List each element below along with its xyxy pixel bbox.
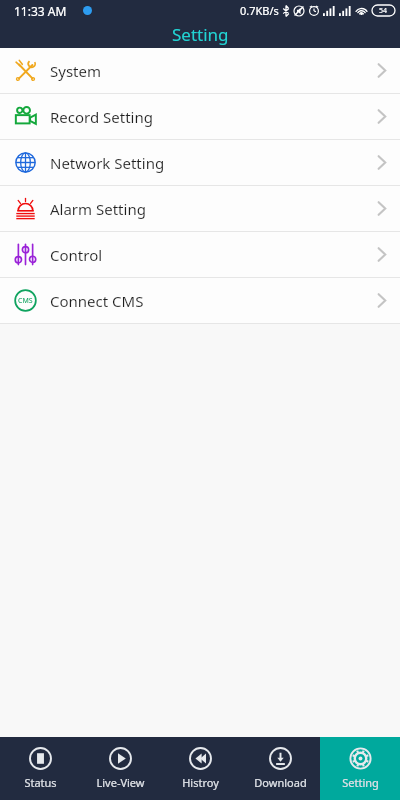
- staticText: Download: [254, 775, 307, 790]
- button[interactable]: Live-View: [80, 737, 160, 800]
- staticText: 11:33 AM: [14, 3, 67, 19]
- button[interactable]: Histroy: [160, 737, 240, 800]
- button[interactable]: Download: [240, 737, 320, 800]
- button[interactable]: Control: [0, 232, 400, 277]
- staticText: Network Setting: [50, 153, 165, 173]
- button[interactable]: Status: [0, 737, 80, 800]
- staticText: CMS: [18, 296, 33, 306]
- staticText: System: [50, 61, 101, 81]
- staticText: Control: [50, 245, 103, 265]
- staticText: Setting: [342, 775, 379, 790]
- button[interactable]: Alarm Setting: [0, 186, 400, 231]
- staticText: Histroy: [182, 775, 219, 790]
- button[interactable]: CMS: [0, 278, 400, 323]
- button[interactable]: Setting: [320, 737, 400, 800]
- staticText: Live-View: [96, 775, 145, 790]
- staticText: Alarm Setting: [50, 199, 146, 219]
- staticText: 0.7KB/s: [240, 3, 279, 18]
- staticText: 54: [379, 6, 388, 16]
- staticText: Status: [24, 775, 57, 790]
- button[interactable]: Network Setting: [0, 140, 400, 185]
- button[interactable]: System: [0, 48, 400, 93]
- staticText: Setting: [172, 23, 229, 46]
- staticText: Record Setting: [50, 107, 153, 127]
- button[interactable]: Record Setting: [0, 94, 400, 139]
- staticText: Connect CMS: [50, 291, 144, 311]
